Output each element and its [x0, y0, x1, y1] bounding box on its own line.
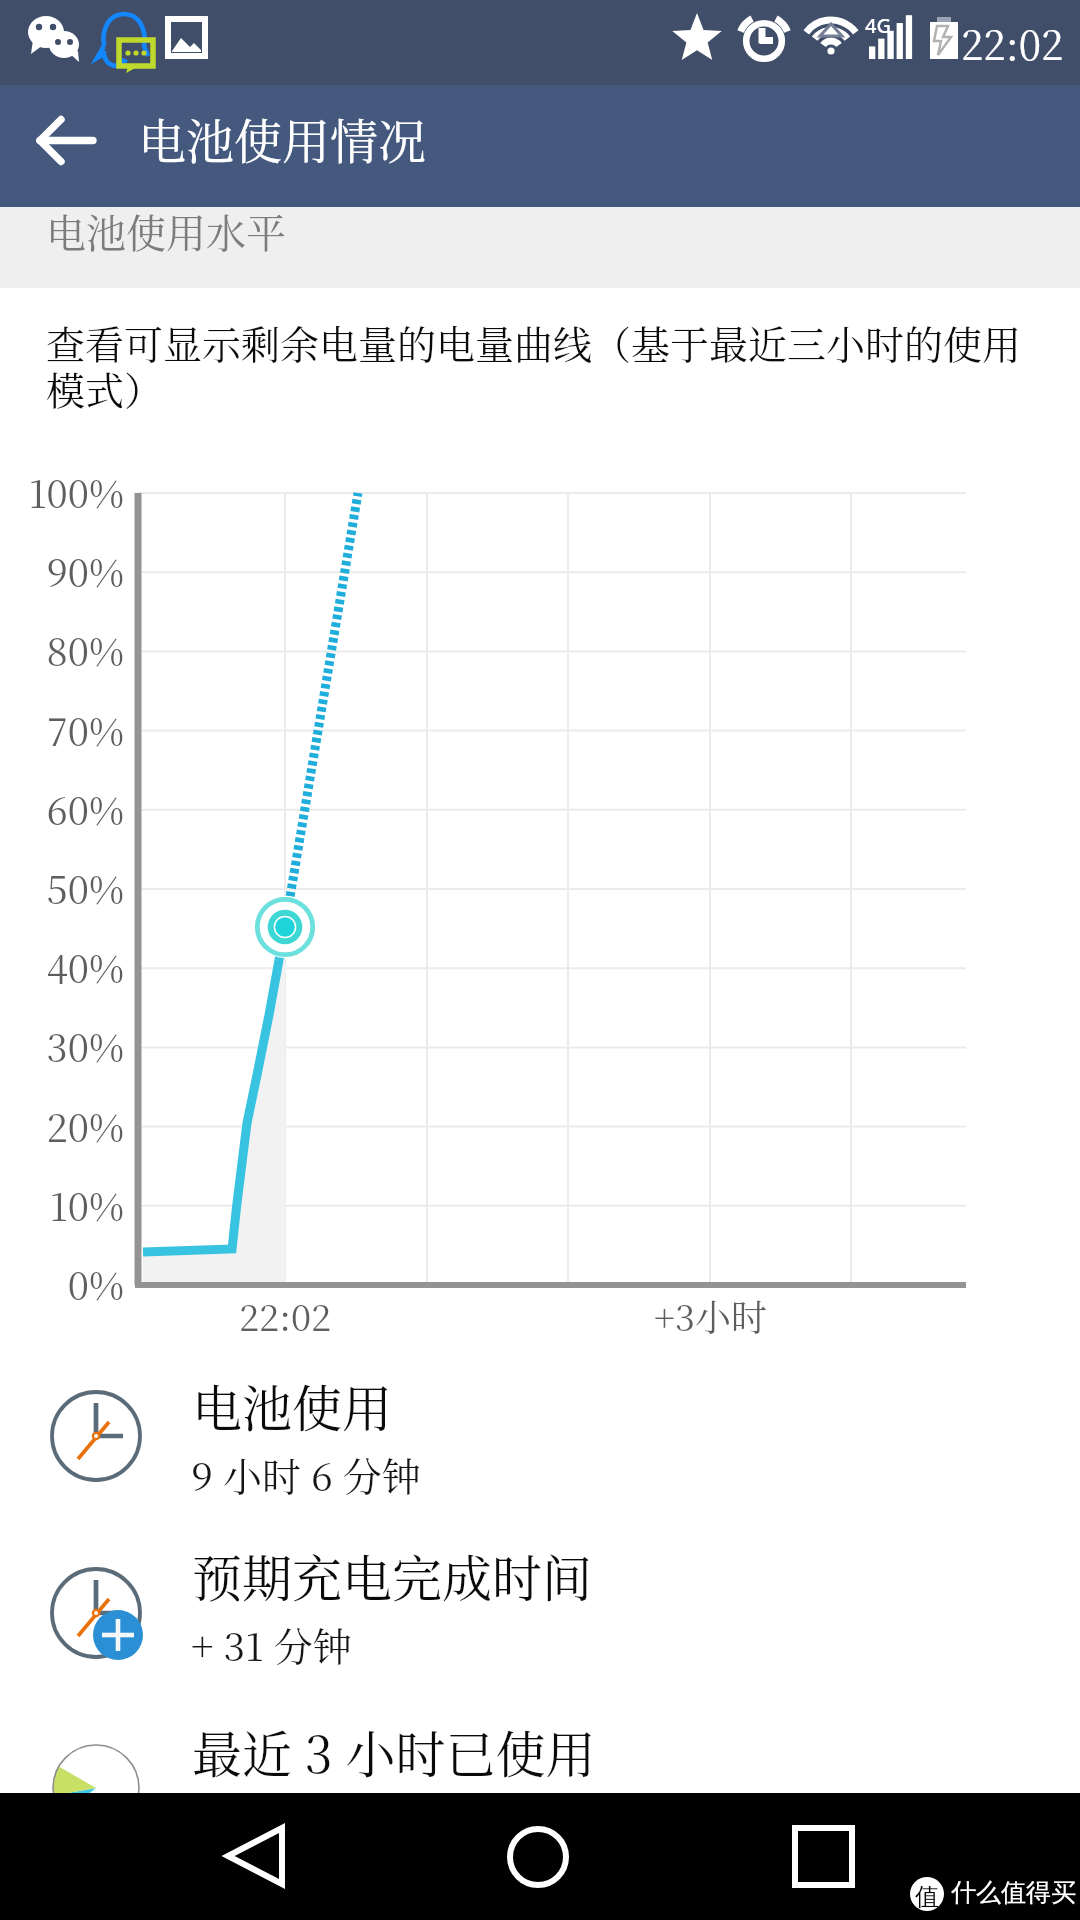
staticText: 电池使用情况 — [138, 104, 427, 173]
staticText: 60% — [46, 781, 124, 836]
staticText: 22:02 — [961, 14, 1064, 71]
button[interactable]: 最近 3 小时已使用 — [0, 1696, 1080, 1866]
button[interactable]: Home — [405, 1793, 675, 1920]
staticText: 10% — [49, 1177, 124, 1232]
staticText: 30% — [46, 1018, 124, 1073]
staticText: 电池使用 — [192, 1369, 392, 1441]
staticText: 100% — [28, 464, 124, 519]
staticText: 4G — [865, 12, 891, 39]
staticText: 什么值得买 — [951, 1877, 1076, 1908]
button[interactable]: Recents — [675, 1793, 945, 1920]
staticText: 50% — [46, 860, 124, 915]
staticText: 70% — [46, 702, 124, 757]
button[interactable]: 电池使用 — [0, 1350, 1080, 1520]
staticText: +3小时 — [654, 1290, 767, 1342]
staticText: 22:02 — [239, 1290, 332, 1342]
staticText: 40% — [46, 939, 124, 994]
staticText: 0% — [67, 1256, 124, 1311]
button[interactable]: 预期充电完成时间 — [0, 1520, 1080, 1690]
staticText: 9 小时 6 分钟 — [191, 1446, 421, 1502]
button[interactable]: Back — [135, 1793, 405, 1920]
staticText: 90% — [46, 543, 124, 598]
staticText: 80% — [46, 622, 124, 677]
staticText: + 31 分钟 — [191, 1616, 352, 1672]
staticText: 最近 3 小时已使用 — [192, 1715, 596, 1787]
staticText: 预期充电完成时间 — [192, 1539, 592, 1611]
staticText: 值 — [915, 1882, 939, 1912]
button[interactable]: Back — [6, 85, 132, 207]
staticText: 查看可显示剩余电量的电量曲线（基于最近三小时的使用模式） — [46, 314, 1046, 416]
staticText: 电池使用水平 — [46, 202, 286, 259]
staticText: 20% — [46, 1098, 124, 1153]
